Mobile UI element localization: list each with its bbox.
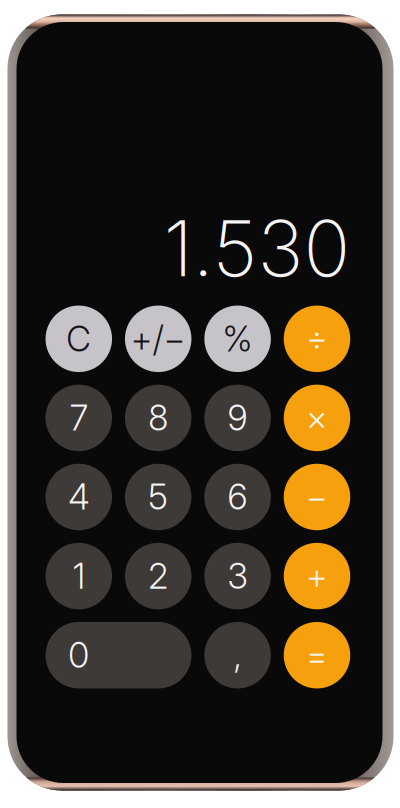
staticText: C	[66, 318, 91, 360]
button[interactable]: ÷	[284, 306, 350, 372]
button[interactable]: ×	[284, 385, 350, 451]
staticText: 8	[148, 397, 168, 439]
staticText: 1.530	[163, 201, 350, 295]
button[interactable]: 7	[45, 385, 112, 451]
button[interactable]: 4	[45, 464, 112, 530]
staticText: 0	[68, 634, 89, 676]
staticText: ,	[234, 634, 242, 676]
button[interactable]: 8	[125, 385, 191, 451]
button[interactable]: 5	[125, 464, 191, 530]
staticText: 4	[68, 476, 89, 518]
button[interactable]: C	[45, 306, 112, 372]
button[interactable]: +	[284, 543, 350, 609]
staticText: +/−	[131, 318, 186, 360]
button[interactable]: 9	[204, 385, 271, 451]
button[interactable]: 2	[125, 543, 191, 609]
staticText: 5	[148, 476, 168, 518]
button[interactable]: ,	[204, 622, 271, 688]
staticText: ×	[306, 397, 328, 439]
button[interactable]: +/−	[125, 306, 191, 372]
staticText: 7	[70, 397, 88, 439]
button[interactable]: =	[284, 622, 350, 688]
staticText: ÷	[306, 318, 328, 360]
staticText: %	[223, 318, 253, 360]
staticText: 1	[73, 555, 85, 597]
staticText: 9	[228, 397, 248, 439]
button[interactable]: −	[284, 464, 350, 530]
button[interactable]: 1	[45, 543, 112, 609]
staticText: +	[306, 555, 328, 597]
button[interactable]: %	[204, 306, 271, 372]
staticText: 2	[148, 555, 168, 597]
staticText: 6	[228, 476, 248, 518]
staticText: −	[306, 476, 328, 518]
button[interactable]: 3	[204, 543, 271, 609]
button[interactable]: 6	[204, 464, 271, 530]
staticText: =	[306, 634, 328, 676]
button[interactable]: 0	[45, 622, 191, 688]
staticText: 3	[228, 555, 248, 597]
